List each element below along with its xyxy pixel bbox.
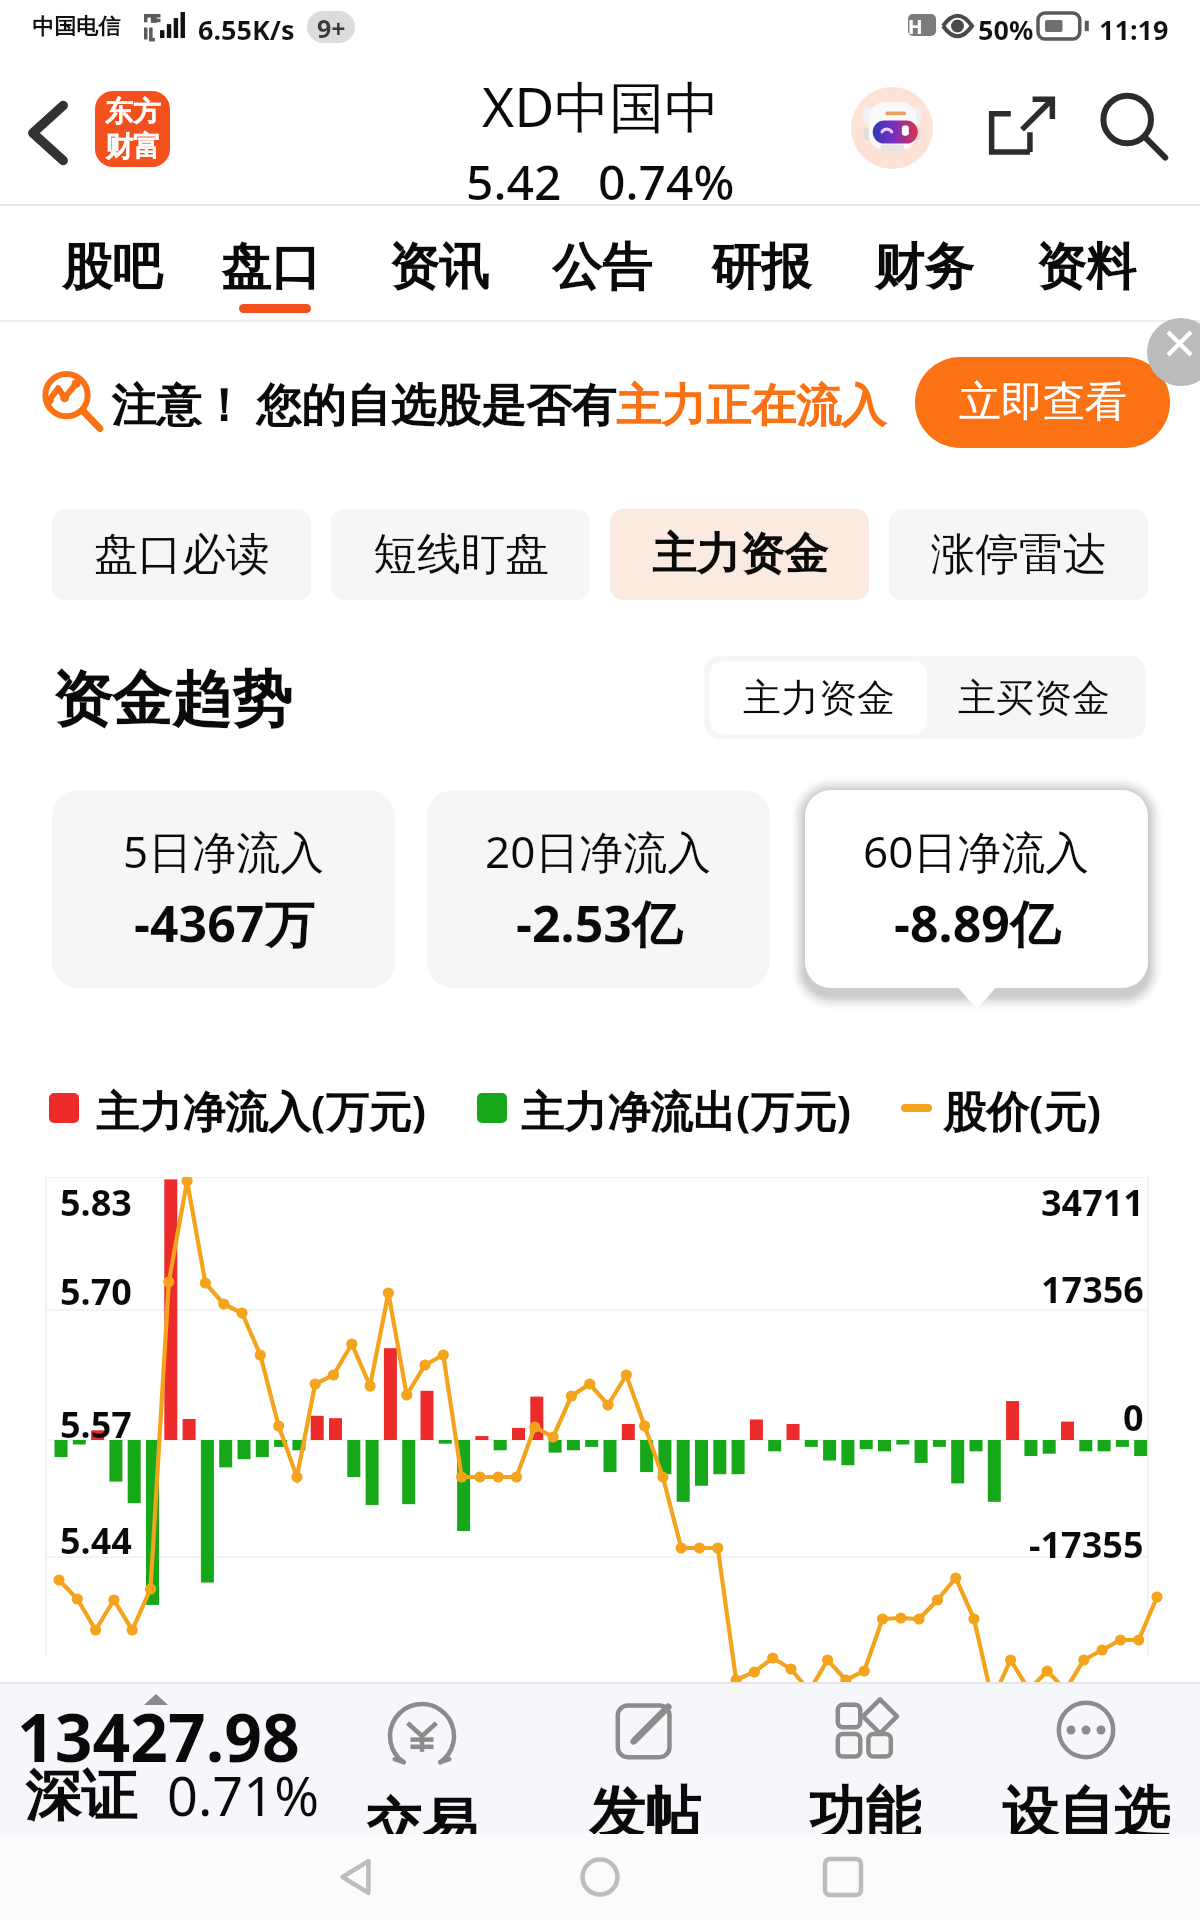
staticText: 注意！: [111, 378, 246, 435]
staticText: 股价(元): [943, 1081, 1102, 1140]
button[interactable]: Search: [1093, 86, 1175, 168]
staticText: 研报: [711, 236, 811, 299]
staticText: -17355: [1029, 1520, 1144, 1569]
staticText: 立即查看: [959, 376, 1127, 429]
staticText: 涨停雷达: [931, 527, 1107, 582]
staticText: 主力净流入(万元): [96, 1081, 427, 1140]
staticText: 主力资金: [743, 674, 895, 722]
button[interactable]: 交易: [312, 1682, 532, 1836]
staticText: 资讯: [389, 236, 489, 299]
staticText: 盘口: [221, 236, 321, 299]
staticText: 短线盯盘: [373, 527, 549, 582]
button[interactable]: Back: [8, 93, 88, 173]
button[interactable]: 资讯: [377, 206, 501, 322]
staticText: 5.83: [60, 1178, 132, 1227]
staticText: 11:19: [1099, 11, 1169, 48]
button[interactable]: 注意！: [39, 315, 886, 483]
button[interactable]: 13427.98: [0, 1682, 330, 1836]
staticText: 设自选: [1002, 1778, 1170, 1836]
staticText: 17356: [1041, 1265, 1144, 1314]
button[interactable]: 主力资金: [610, 509, 869, 600]
staticText: 5日净流入: [123, 821, 325, 881]
button[interactable]: 主买资金: [927, 661, 1140, 734]
button[interactable]: 公告: [540, 206, 664, 322]
staticText: 5.42: [466, 149, 562, 214]
staticText: 资金趋势: [52, 662, 292, 738]
staticText: -8.89亿: [894, 889, 1060, 957]
button[interactable]: 盘口: [209, 206, 333, 322]
button[interactable]: 20日净流入: [427, 790, 770, 988]
button[interactable]: AI assistant: [851, 87, 933, 169]
staticText: 50%: [978, 11, 1034, 48]
staticText: -4367万: [134, 889, 315, 957]
staticText: 主力正在流入: [616, 378, 886, 435]
staticText: HD: [908, 14, 936, 36]
button[interactable]: Recents: [808, 1842, 878, 1912]
button[interactable]: Back: [322, 1842, 392, 1912]
button[interactable]: 功能: [755, 1682, 975, 1836]
button[interactable]: 5日净流入: [52, 790, 395, 988]
staticText: 财务: [874, 236, 974, 299]
button[interactable]: 60日净流入: [805, 790, 1148, 988]
button[interactable]: 发帖: [535, 1682, 755, 1836]
button[interactable]: 主力资金: [710, 661, 927, 734]
staticText: 0.74%: [598, 149, 735, 214]
button[interactable]: East Money logo: [95, 91, 170, 167]
button[interactable]: 涨停雷达: [889, 509, 1148, 600]
button[interactable]: 设自选: [976, 1682, 1196, 1836]
staticText: 主力净流出(万元): [521, 1081, 852, 1140]
button[interactable]: 股吧: [50, 206, 174, 322]
button[interactable]: Close: [1147, 318, 1200, 386]
staticText: 60日净流入: [863, 821, 1090, 881]
staticText: 公告: [552, 236, 652, 299]
staticText: 20日净流入: [485, 821, 712, 881]
staticText: 您的自选股是否有: [256, 378, 616, 435]
button[interactable]: Share: [981, 86, 1063, 168]
staticText: 盘口必读: [94, 527, 270, 582]
button[interactable]: 资料: [1024, 206, 1148, 322]
button[interactable]: 立即查看: [915, 357, 1170, 448]
staticText: 0.71%: [167, 1758, 320, 1832]
button[interactable]: 短线盯盘: [331, 509, 590, 600]
staticText: 34711: [1041, 1178, 1144, 1227]
staticText: 交易: [366, 1790, 478, 1836]
button[interactable]: 研报: [699, 206, 823, 322]
staticText: 财富: [105, 129, 161, 164]
staticText: 东方: [105, 94, 161, 129]
staticText: 0: [1123, 1393, 1144, 1442]
staticText: 资料: [1036, 236, 1136, 299]
staticText: 股吧: [62, 236, 162, 299]
staticText: 主力资金: [652, 527, 828, 582]
staticText: 6.55K/s: [198, 11, 295, 48]
staticText: 5.44: [60, 1516, 132, 1565]
staticText: 深证: [25, 1761, 137, 1832]
button[interactable]: 盘口必读: [52, 509, 311, 600]
staticText: 9+: [317, 11, 346, 43]
staticText: 中国电信: [32, 13, 120, 41]
staticText: XD中国中: [482, 68, 720, 143]
button[interactable]: Home: [565, 1842, 635, 1912]
staticText: 5.57: [60, 1400, 132, 1449]
staticText: 13427.98: [17, 1691, 300, 1781]
staticText: 5.70: [60, 1267, 132, 1316]
button[interactable]: 财务: [862, 206, 986, 322]
staticText: 主买资金: [958, 674, 1110, 722]
staticText: -2.53亿: [516, 889, 682, 957]
staticText: 发帖: [589, 1778, 701, 1836]
staticText: 功能: [809, 1778, 921, 1836]
